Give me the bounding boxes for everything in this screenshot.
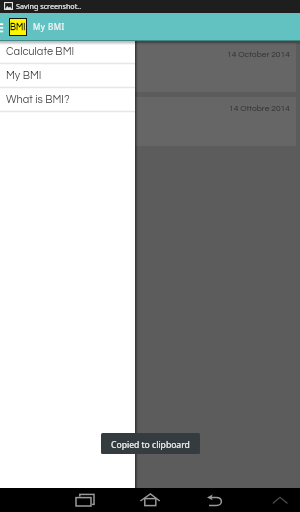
staticText: What is BMI? <box>6 94 70 105</box>
button[interactable]: 14 Ottobre 2014 <box>4 97 296 146</box>
button[interactable]: Home <box>136 488 164 512</box>
button[interactable]: What is BMI? <box>0 88 135 112</box>
button[interactable]: Calculate BMI <box>0 40 135 64</box>
staticText: BMI <box>10 23 26 32</box>
staticText: 14 October 2014 <box>227 50 290 59</box>
staticText: Saving screenshot.. <box>16 1 82 11</box>
staticText: My BMI <box>33 21 65 32</box>
button[interactable]: Open navigation drawer <box>0 22 4 32</box>
staticText: Calculate BMI <box>6 46 75 57</box>
staticText: 14 Ottobre 2014 <box>229 104 290 113</box>
staticText: Copied to clipboard <box>111 439 190 451</box>
button[interactable]: Recent apps <box>70 488 98 512</box>
button[interactable]: My BMI <box>0 64 135 88</box>
staticText: My BMI <box>6 70 42 81</box>
button[interactable]: Back <box>201 488 229 512</box>
button[interactable]: 14 October 2014 <box>4 43 296 92</box>
button[interactable]: Show navigation bar <box>266 488 294 512</box>
